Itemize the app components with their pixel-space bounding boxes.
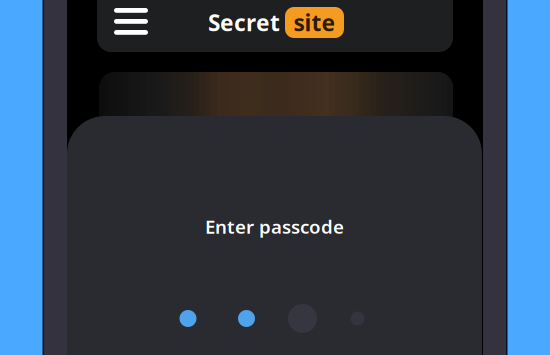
button[interactable]: Secret [208,7,344,38]
staticText: Enter passcode [205,214,344,239]
button[interactable]: Open menu [102,0,160,47]
staticText: Secret [208,7,280,37]
staticText: site [293,7,335,37]
